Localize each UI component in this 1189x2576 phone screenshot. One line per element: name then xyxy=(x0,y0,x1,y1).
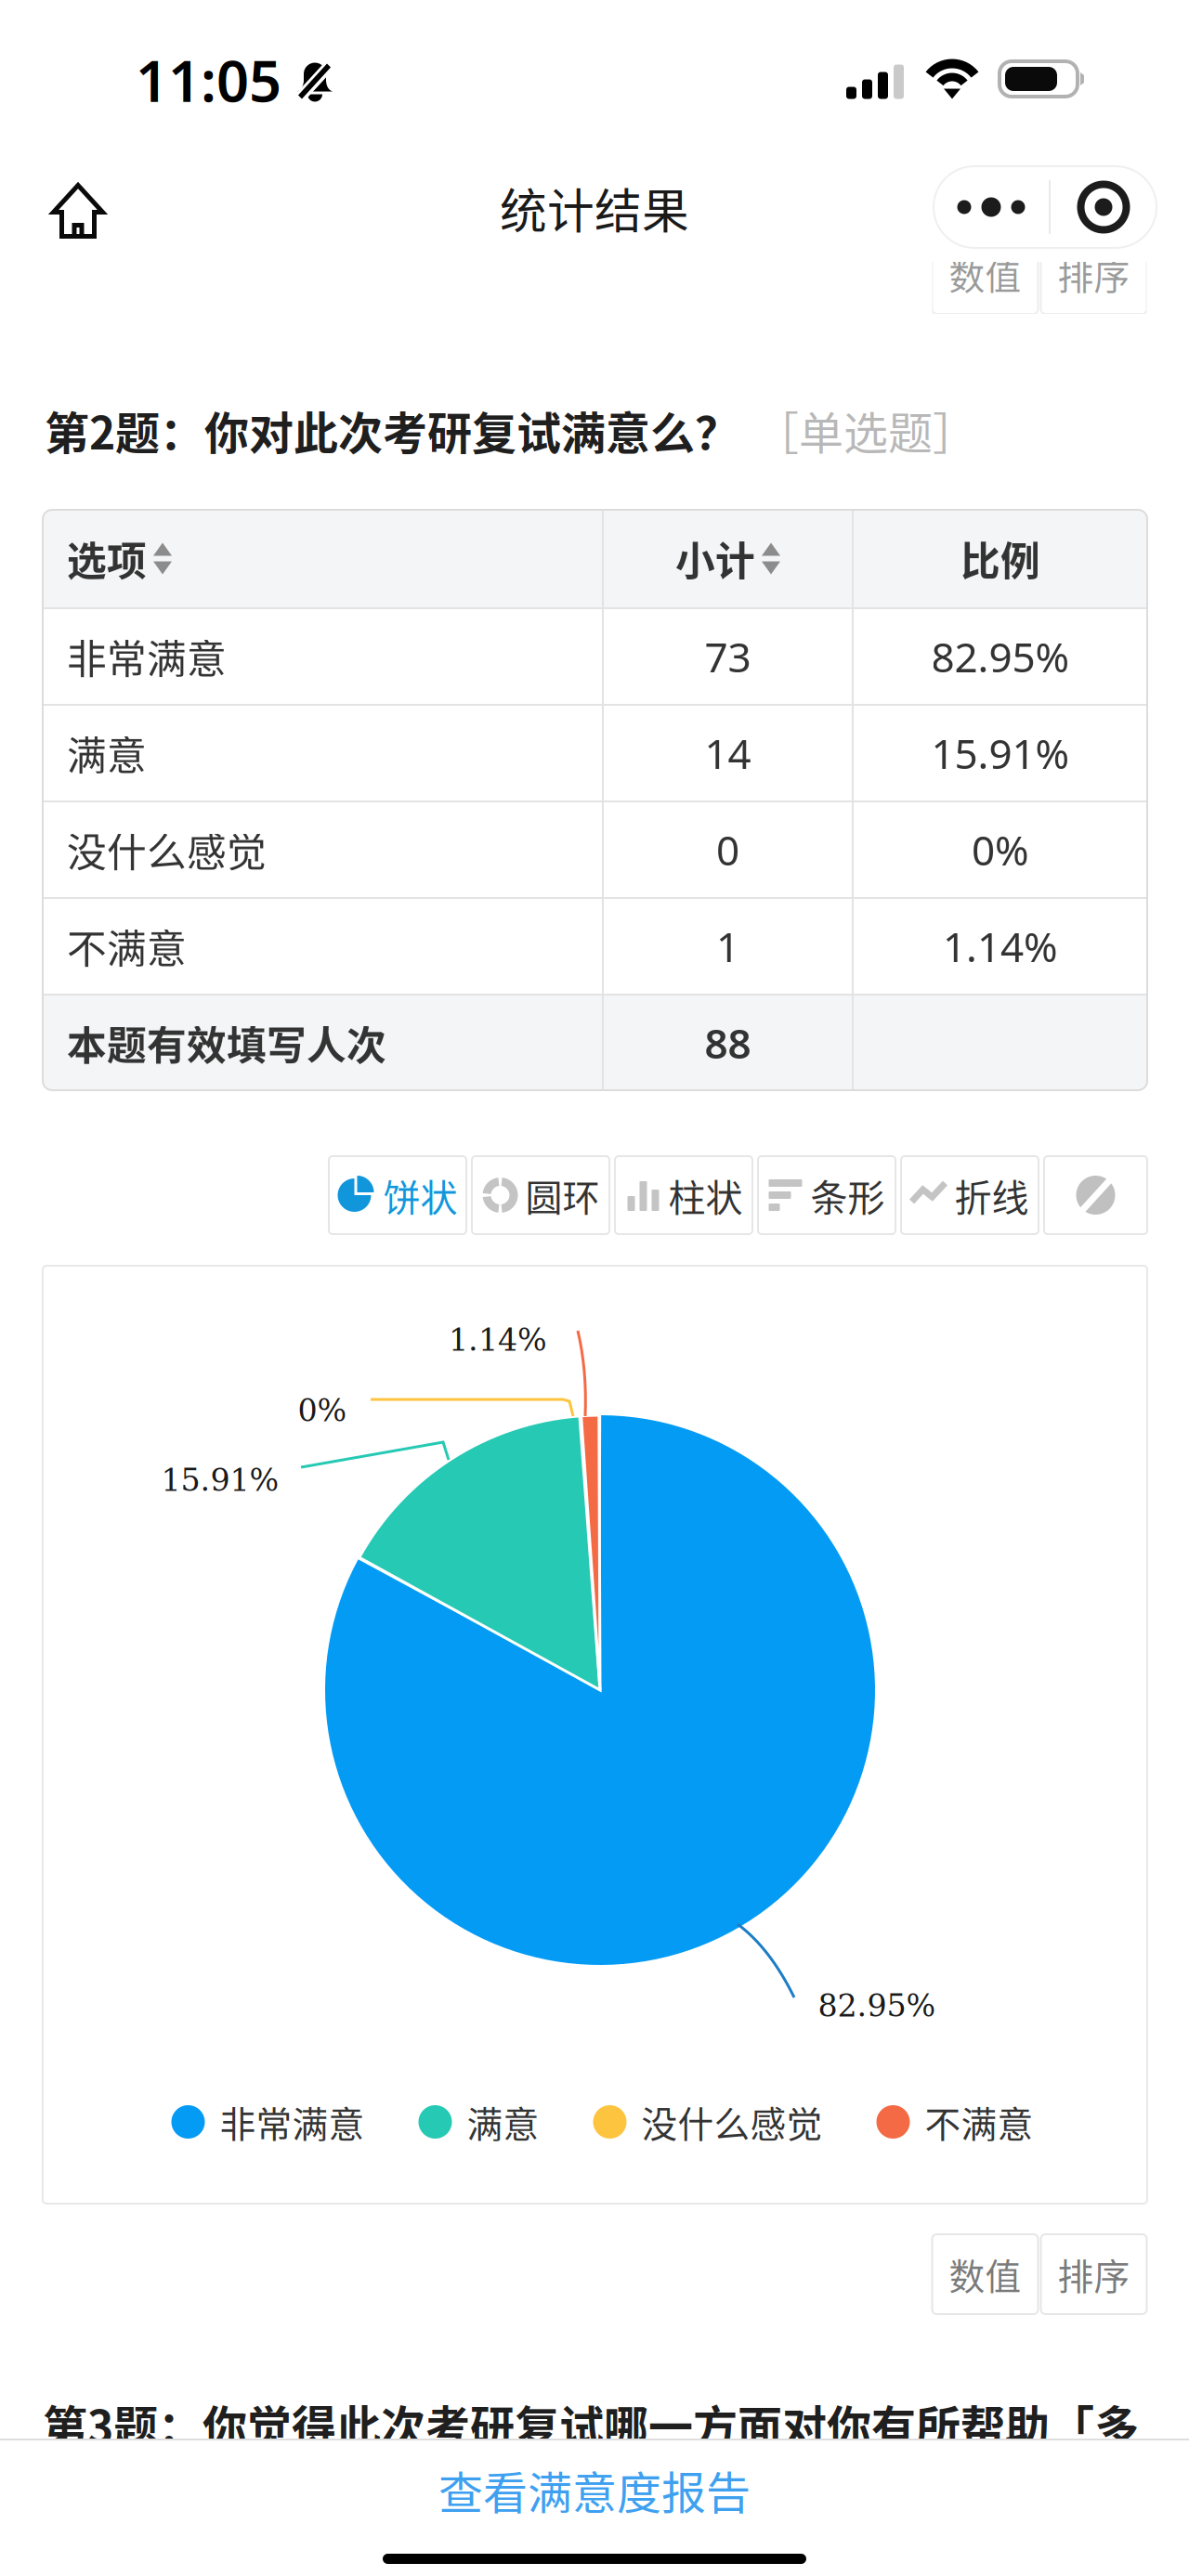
button[interactable]: Disable chart xyxy=(1044,1156,1147,1234)
staticText: 15.91% xyxy=(931,726,1070,780)
staticText: 数值 xyxy=(949,248,1021,300)
staticText: 满意 xyxy=(67,724,147,782)
staticText: 0 xyxy=(716,823,739,877)
staticText: 柱状 xyxy=(668,1168,743,1222)
button[interactable]: Value and sort xyxy=(1041,234,1147,314)
staticText: 小计 xyxy=(675,530,755,587)
button[interactable]: 柱状 xyxy=(615,1156,752,1234)
button[interactable]: 圆环 xyxy=(472,1156,609,1234)
button[interactable]: Home xyxy=(52,183,105,236)
staticText: 没什么感觉 xyxy=(641,2096,823,2148)
button[interactable]: More options xyxy=(934,166,1156,248)
staticText: 11:05 xyxy=(136,42,281,118)
staticText: 1.14% xyxy=(943,919,1058,973)
staticText: 数值 xyxy=(949,2248,1021,2300)
staticText: 不满意 xyxy=(67,918,187,975)
staticText: 第2题：你对此次考研复试满意么？ xyxy=(45,398,739,462)
staticText: 88 xyxy=(705,1016,751,1070)
button[interactable]: 数值 xyxy=(932,2234,1038,2314)
staticText: 查看满意度报告 xyxy=(438,2457,751,2522)
staticText: 统计结果 xyxy=(500,174,689,242)
staticText: 82.95% xyxy=(818,1988,936,2024)
staticText: 饼状 xyxy=(383,1168,457,1222)
staticText: 第3题：你觉得此次考研复试哪一方面对你有所帮助「多 xyxy=(43,2391,1139,2456)
staticText: 0% xyxy=(298,1393,347,1429)
button[interactable]: 查看满意度报告 xyxy=(0,2440,1189,2539)
button[interactable]: 排序 xyxy=(1041,2234,1147,2314)
staticText: 条形 xyxy=(810,1168,885,1222)
staticText: 满意 xyxy=(467,2096,539,2148)
staticText: 非常满意 xyxy=(220,2096,365,2148)
staticText: 1 xyxy=(716,919,739,973)
staticText: 非常满意 xyxy=(67,628,227,685)
staticText: ［单选题］ xyxy=(754,398,977,462)
staticText: 圆环 xyxy=(525,1168,600,1222)
button[interactable]: 条形 xyxy=(758,1156,895,1234)
staticText: 73 xyxy=(705,629,751,684)
staticText: 1.14% xyxy=(449,1322,547,1358)
button[interactable]: 折线 xyxy=(901,1156,1039,1234)
staticText: 选项 xyxy=(67,530,147,587)
button[interactable]: 饼状 xyxy=(329,1156,466,1234)
staticText: 0% xyxy=(972,823,1029,877)
staticText: 排序 xyxy=(1058,2248,1130,2300)
button[interactable]: Value and sort xyxy=(932,234,1038,314)
staticText: 15.91% xyxy=(161,1462,279,1498)
staticText: 本题有效填写人次 xyxy=(67,1014,386,1072)
staticText: 比例 xyxy=(960,530,1040,587)
staticText: 没什么感觉 xyxy=(67,821,267,878)
staticText: 折线 xyxy=(954,1168,1029,1222)
staticText: 14 xyxy=(705,726,751,780)
staticText: 82.95% xyxy=(931,629,1070,684)
staticText: 不满意 xyxy=(925,2096,1033,2148)
staticText: 排序 xyxy=(1058,248,1130,300)
